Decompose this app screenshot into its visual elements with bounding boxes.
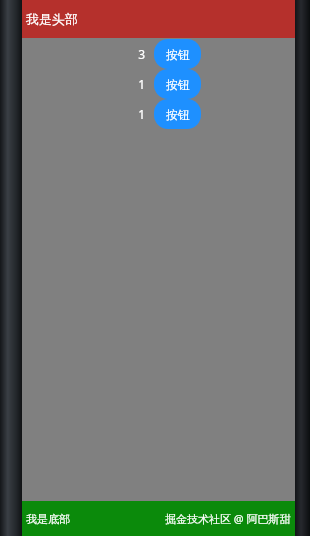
staticText: 按钮	[166, 77, 190, 92]
staticText: 我是头部	[26, 11, 78, 27]
button[interactable]: 我是底部	[22, 501, 295, 536]
staticText: 3	[138, 46, 145, 62]
staticText: 按钮	[166, 107, 190, 122]
button[interactable]: 我是头部	[22, 0, 295, 38]
button[interactable]: 按钮	[154, 39, 201, 69]
staticText: 掘金技术社区 @ 阿巴斯甜	[165, 511, 291, 526]
button[interactable]: 按钮	[154, 69, 201, 99]
staticText: 1	[138, 76, 145, 92]
staticText: 按钮	[166, 47, 190, 62]
staticText: 我是底部	[26, 512, 70, 526]
staticText: 1	[138, 106, 145, 122]
button[interactable]: 按钮	[154, 99, 201, 129]
